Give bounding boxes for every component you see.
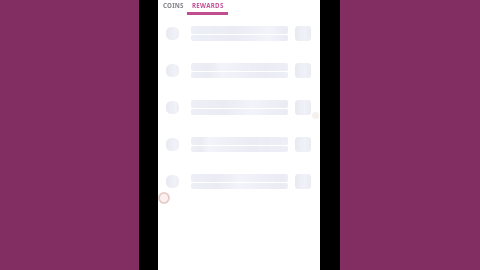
button[interactable]	[158, 126, 320, 163]
button[interactable]: COINS	[160, 0, 186, 15]
other: Touch indicator	[312, 112, 319, 119]
staticText: REWARDS	[192, 1, 224, 9]
button[interactable]: REWARDS	[186, 0, 229, 15]
button[interactable]	[158, 89, 320, 126]
staticText: COINS	[163, 1, 184, 9]
button[interactable]	[158, 15, 320, 52]
other: Touch indicator	[158, 192, 170, 204]
button[interactable]	[158, 163, 320, 200]
button[interactable]	[158, 52, 320, 89]
